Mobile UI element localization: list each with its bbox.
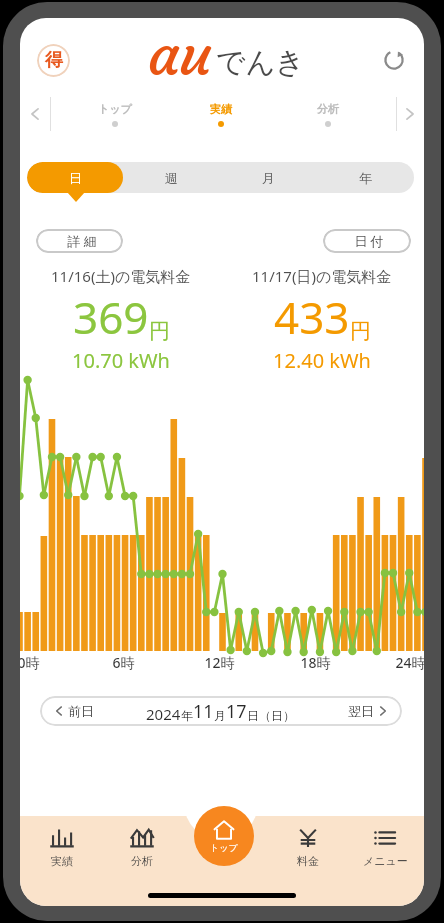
staticText: 0時 (20, 653, 40, 672)
staticText: 分析 (131, 854, 153, 868)
staticText: 円 (350, 318, 371, 344)
staticText: 24時 (395, 653, 424, 672)
staticText: 11/17(日)の電気料金 (252, 266, 392, 286)
button[interactable]: トップ (67, 92, 163, 136)
staticText: 月 (262, 170, 275, 186)
staticText: 得 (45, 49, 63, 72)
button[interactable]: 分析 (102, 824, 182, 868)
staticText: 年 (359, 170, 372, 186)
staticText: 前日 (68, 703, 94, 719)
staticText: 翌日 (348, 703, 374, 719)
staticText: 分析 (317, 102, 339, 116)
staticText: 10.70 kWh (72, 347, 170, 374)
staticText: 週 (165, 170, 178, 186)
staticText: 369 (73, 287, 149, 347)
staticText: トップ (98, 102, 132, 116)
staticText: 6時 (112, 653, 135, 672)
button[interactable]: 翌日 (348, 703, 390, 719)
staticText: 日 (69, 170, 82, 186)
staticText: 円 (149, 318, 170, 344)
button[interactable]: Next (396, 92, 424, 136)
staticText: 17 (226, 699, 247, 724)
button[interactable]: 料金 (268, 824, 348, 868)
staticText: au (148, 18, 212, 91)
button[interactable]: 実績 (173, 92, 269, 136)
staticText: 日（日） (247, 708, 295, 723)
staticText: 433 (274, 287, 350, 347)
staticText: 2024 (146, 704, 181, 724)
button[interactable]: Previous (20, 92, 50, 136)
staticText: トップ (210, 842, 238, 853)
staticText: 12時 (204, 653, 235, 672)
staticText: 詳細 (66, 233, 98, 249)
button[interactable]: 日 (27, 162, 123, 193)
staticText: 月 (214, 708, 226, 723)
button[interactable]: 前日 (52, 703, 94, 719)
button[interactable]: トップ (194, 806, 254, 866)
button[interactable]: 月 (220, 162, 317, 193)
button[interactable]: メニュー (345, 824, 424, 868)
staticText: 12.40 kWh (273, 347, 371, 374)
button[interactable]: 分析 (280, 92, 376, 136)
button[interactable]: 得 (37, 44, 70, 77)
staticText: 料金 (297, 854, 319, 868)
button[interactable]: 日付 (323, 229, 411, 253)
staticText: 実績 (51, 854, 73, 868)
button[interactable]: 週 (123, 162, 220, 193)
staticText: 11 (193, 699, 214, 724)
staticText: メニュー (363, 854, 408, 868)
staticText: 年 (181, 708, 193, 723)
button[interactable]: 年 (317, 162, 414, 193)
button[interactable]: 詳細 (36, 229, 123, 253)
staticText: 日付 (353, 233, 385, 249)
staticText: 実績 (210, 102, 232, 116)
staticText: でんき (216, 44, 306, 81)
staticText: 18時 (300, 653, 331, 672)
button[interactable]: 実績 (22, 824, 102, 868)
staticText: 11/16(土)の電気料金 (51, 266, 191, 286)
button[interactable]: Reload (377, 43, 411, 77)
